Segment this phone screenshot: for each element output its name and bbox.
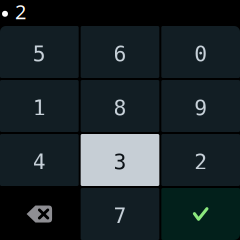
button[interactable]: 3 [81, 134, 159, 186]
staticText: 5 [33, 42, 46, 66]
staticText: 9 [194, 96, 207, 120]
button[interactable]: 6 [81, 26, 159, 78]
button[interactable]: Delete [0, 188, 79, 240]
button[interactable]: 0 [161, 26, 240, 78]
button[interactable]: 1 [0, 80, 79, 132]
button[interactable]: 9 [161, 80, 240, 132]
button[interactable]: 2 [161, 134, 240, 186]
button[interactable]: 7 [81, 188, 159, 240]
button[interactable]: Confirm [161, 188, 240, 240]
button[interactable]: 8 [81, 80, 159, 132]
staticText: 6 [113, 42, 126, 66]
staticText: 4 [33, 150, 46, 174]
staticText: 0 [194, 42, 207, 66]
staticText: 7 [113, 204, 126, 228]
button[interactable]: 5 [0, 26, 79, 78]
staticText: 8 [113, 96, 126, 120]
staticText: 2 [15, 0, 26, 25]
staticText: 3 [113, 150, 126, 174]
button[interactable]: 4 [0, 134, 79, 186]
staticText: 1 [33, 96, 46, 120]
staticText: 2 [194, 150, 207, 174]
